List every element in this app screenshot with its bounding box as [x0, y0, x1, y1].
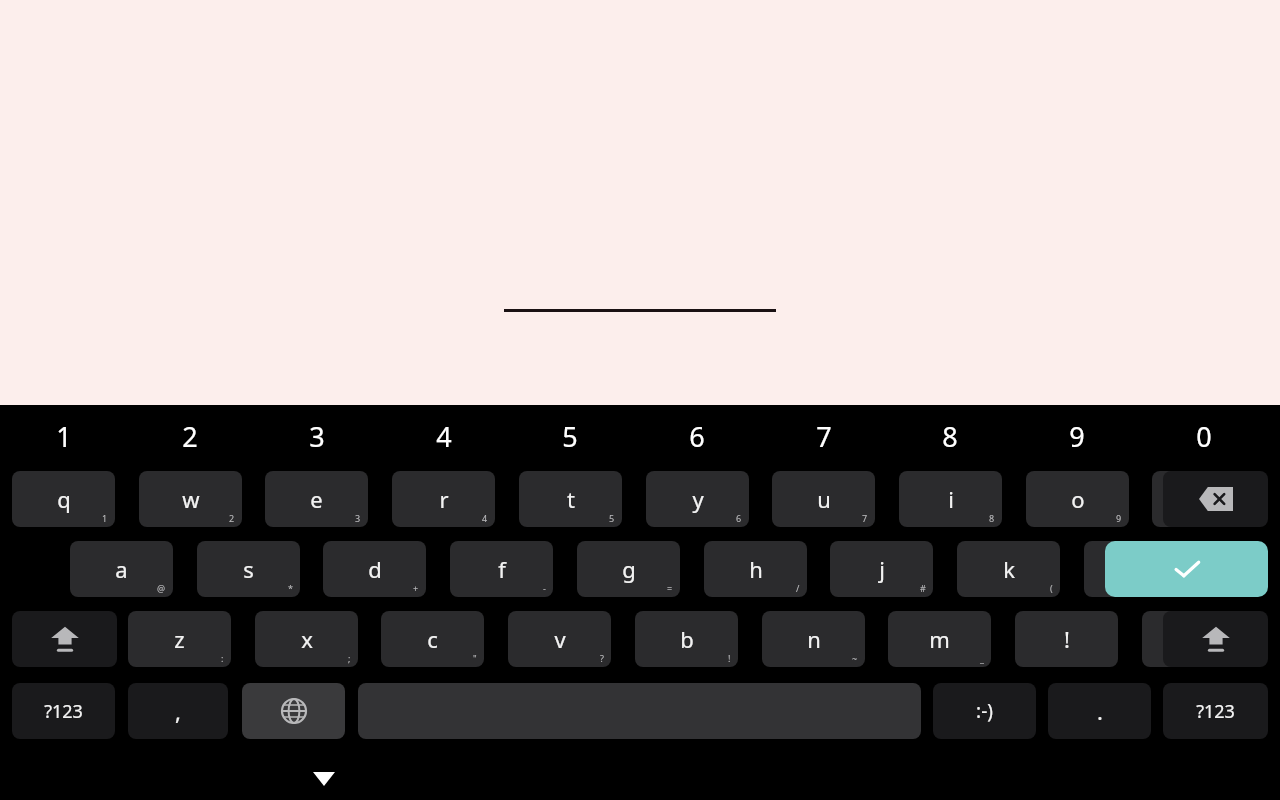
staticText: 9 [1069, 418, 1085, 455]
button[interactable]: ?123 [12, 683, 115, 739]
staticText: y [692, 484, 704, 514]
staticText: s [243, 554, 254, 584]
staticText: 7 [816, 418, 832, 455]
button[interactable]: l [1084, 541, 1187, 597]
staticText: ~ [852, 652, 858, 664]
staticText: ? [600, 652, 604, 664]
staticText: v [554, 624, 566, 654]
staticText: @ [157, 582, 166, 594]
button[interactable]: Enter [1105, 541, 1268, 597]
button[interactable]: Hide keyboard [300, 755, 348, 800]
button[interactable]: , [128, 683, 228, 739]
staticText: , [175, 696, 181, 726]
button[interactable]: e [265, 471, 368, 527]
staticText: d [368, 554, 382, 584]
button[interactable]: k [957, 541, 1060, 597]
button[interactable]: n [762, 611, 865, 667]
button[interactable]: Backspace [1163, 471, 1268, 527]
button[interactable]: i [899, 471, 1002, 527]
button[interactable]: x [255, 611, 358, 667]
staticText: a [115, 554, 128, 584]
staticText: q [57, 484, 71, 514]
button[interactable]: m [888, 611, 991, 667]
staticText: ! [1064, 624, 1070, 654]
staticText: 4 [436, 418, 452, 455]
staticText: g [622, 554, 636, 584]
staticText: w [182, 484, 200, 514]
staticText: 4 [482, 512, 488, 524]
button[interactable]: Shift [12, 611, 117, 667]
button[interactable]: g [577, 541, 680, 597]
staticText: x [301, 624, 313, 654]
staticText: f [498, 554, 506, 584]
staticText: j [879, 554, 885, 584]
staticText: 3 [355, 512, 361, 524]
staticText: o [1071, 484, 1085, 514]
staticText: 9 [1116, 512, 1122, 524]
staticText: 8 [989, 512, 995, 524]
staticText: / [796, 582, 800, 594]
staticText: ! [728, 652, 731, 664]
button[interactable]: Change keyboard language [242, 683, 345, 739]
staticText: " [473, 652, 477, 664]
staticText: p [1197, 484, 1211, 514]
staticText: :-) [976, 698, 993, 724]
staticText: t [567, 484, 575, 514]
button[interactable]: :-) [933, 683, 1036, 739]
staticText: u [817, 484, 831, 514]
staticText: m [929, 624, 950, 654]
staticText: n [807, 624, 821, 654]
button[interactable]: p [1152, 471, 1255, 527]
button[interactable]: q [12, 471, 115, 527]
button[interactable]: z [128, 611, 231, 667]
button[interactable]: . [1048, 683, 1151, 739]
staticText: 5 [609, 512, 615, 524]
staticText: b [680, 624, 694, 654]
button[interactable]: j [830, 541, 933, 597]
staticText: 8 [942, 418, 958, 455]
staticText: c [427, 624, 438, 654]
button[interactable]: r [392, 471, 495, 527]
staticText: h [749, 554, 763, 584]
staticText: # [920, 582, 926, 594]
button[interactable]: h [704, 541, 807, 597]
staticText: = [667, 582, 673, 594]
staticText: 7 [862, 512, 868, 524]
button[interactable]: c [381, 611, 484, 667]
button[interactable]: s [197, 541, 300, 597]
button[interactable]: ?123 [1163, 683, 1268, 739]
staticText: e [310, 484, 323, 514]
staticText: * [288, 582, 293, 594]
staticText: 3 [309, 418, 325, 455]
button[interactable]: Shift [1163, 611, 1268, 667]
staticText: ?123 [44, 699, 83, 724]
button[interactable]: v [508, 611, 611, 667]
button[interactable]: b [635, 611, 738, 667]
staticText: z [174, 624, 185, 654]
button[interactable]: y [646, 471, 749, 527]
staticText: k [1003, 554, 1015, 584]
staticText: _ [980, 652, 984, 664]
staticText: + [413, 582, 419, 594]
button[interactable]: ! [1015, 611, 1118, 667]
button[interactable]: o [1026, 471, 1129, 527]
staticText: ( [1050, 582, 1053, 594]
button[interactable]: t [519, 471, 622, 527]
button[interactable]: d [323, 541, 426, 597]
staticText: 2 [182, 418, 198, 455]
staticText: r [439, 484, 449, 514]
staticText: . [1097, 696, 1103, 726]
button[interactable]: u [772, 471, 875, 527]
button[interactable]: ? [1142, 611, 1245, 667]
button[interactable]: w [139, 471, 242, 527]
button[interactable]: f [450, 541, 553, 597]
staticText: 5 [562, 418, 578, 455]
staticText: 1 [56, 418, 72, 455]
staticText: : [221, 652, 224, 664]
button[interactable]: a [70, 541, 173, 597]
